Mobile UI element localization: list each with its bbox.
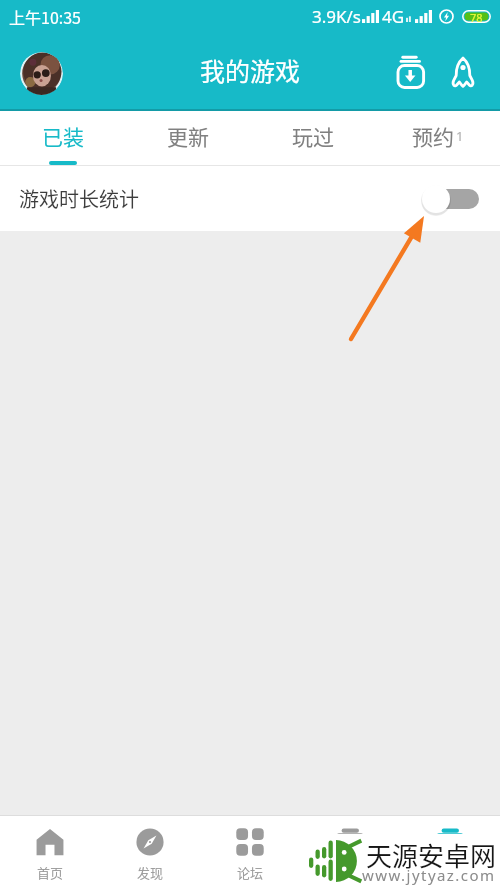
button[interactable]: 游戏时长统计 bbox=[0, 166, 500, 231]
button[interactable]: 我的 bbox=[400, 820, 500, 889]
button[interactable]: Speed boost bbox=[442, 51, 484, 93]
staticText: 4G bbox=[382, 5, 405, 28]
staticText: 游戏时长统计 bbox=[19, 184, 139, 213]
staticText: 我的游戏 bbox=[200, 52, 301, 88]
staticText: 预约 bbox=[412, 121, 454, 151]
button[interactable]: 论坛 bbox=[200, 820, 300, 889]
staticText: 玩过 bbox=[292, 121, 334, 151]
staticText: 游戏 bbox=[337, 863, 364, 882]
staticText: 1 bbox=[456, 127, 464, 145]
button[interactable]: 发现 bbox=[100, 820, 200, 889]
staticText: 更新 bbox=[167, 121, 209, 151]
staticText: 78 bbox=[470, 10, 483, 23]
button[interactable]: Profile bbox=[20, 52, 63, 95]
staticText: 已装 bbox=[42, 121, 84, 151]
button[interactable]: 预约 bbox=[375, 111, 500, 166]
button[interactable]: 更新 bbox=[125, 111, 250, 166]
button[interactable]: Downloads bbox=[389, 51, 431, 93]
staticText: 上午10:35 bbox=[9, 5, 81, 28]
staticText: www.jytyaz.com bbox=[362, 865, 496, 885]
staticText: 发现 bbox=[137, 863, 164, 882]
staticText: 3.9K/s bbox=[312, 5, 361, 28]
staticText: 天源安卓网 bbox=[366, 836, 497, 874]
button[interactable]: 已装 bbox=[0, 111, 125, 166]
button[interactable]: 游戏 bbox=[300, 820, 400, 889]
button[interactable]: 首页 bbox=[0, 820, 100, 889]
staticText: 我的 bbox=[437, 863, 464, 882]
button[interactable]: 玩过 bbox=[250, 111, 375, 166]
staticText: 论坛 bbox=[237, 863, 264, 882]
staticText: 首页 bbox=[37, 863, 64, 882]
